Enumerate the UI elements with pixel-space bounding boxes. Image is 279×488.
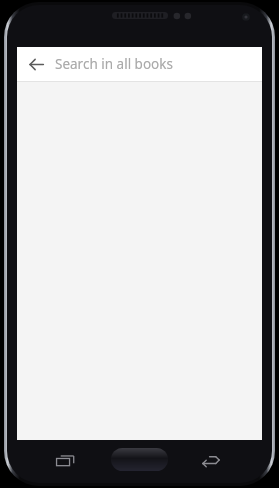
staticText: Search in all books (55, 55, 173, 73)
button[interactable]: Back (17, 47, 55, 81)
button[interactable]: Recents (55, 452, 81, 470)
button[interactable]: Search in all books (55, 47, 262, 81)
button[interactable]: Home (111, 448, 168, 471)
button[interactable]: Back (199, 452, 223, 470)
